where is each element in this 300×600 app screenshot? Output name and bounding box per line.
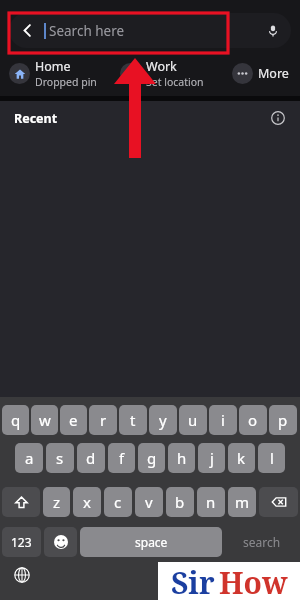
- button[interactable]: v: [135, 487, 163, 517]
- staticText: h: [177, 448, 187, 468]
- button[interactable]: n: [197, 487, 225, 517]
- staticText: z: [53, 492, 61, 512]
- button[interactable]: f: [108, 443, 135, 473]
- staticText: space: [135, 534, 168, 550]
- button[interactable]: Recent: [0, 101, 300, 135]
- button[interactable]: p: [269, 405, 297, 435]
- staticText: Recent: [14, 110, 58, 127]
- button[interactable]: search: [225, 527, 298, 557]
- button[interactable]: o: [239, 405, 267, 435]
- staticText: m: [235, 492, 250, 512]
- staticText: p: [278, 410, 288, 430]
- staticText: d: [86, 448, 96, 468]
- button[interactable]: Backspace: [259, 487, 298, 517]
- staticText: l: [270, 448, 274, 468]
- button[interactable]: h: [168, 443, 195, 473]
- button[interactable]: u: [179, 405, 207, 435]
- button[interactable]: x: [73, 487, 101, 517]
- button[interactable]: a: [15, 443, 43, 473]
- staticText: Dropped pin: [35, 75, 97, 89]
- button[interactable]: m: [228, 487, 256, 517]
- button[interactable]: z: [43, 487, 70, 517]
- staticText: g: [147, 448, 157, 468]
- staticText: Home: [35, 58, 71, 75]
- staticText: r: [100, 410, 107, 430]
- button[interactable]: Information: [267, 107, 289, 129]
- button[interactable]: s: [46, 443, 74, 473]
- staticText: u: [188, 410, 198, 430]
- staticText: c: [114, 492, 122, 512]
- button[interactable]: 123: [2, 527, 41, 557]
- staticText: q: [11, 410, 21, 430]
- button[interactable]: More: [232, 63, 291, 84]
- staticText: t: [130, 410, 136, 430]
- button[interactable]: t: [119, 405, 147, 435]
- staticText: x: [83, 492, 91, 512]
- staticText: 123: [11, 534, 32, 550]
- staticText: More: [258, 65, 289, 82]
- staticText: s: [56, 448, 64, 468]
- button[interactable]: Change keyboard language: [10, 563, 34, 587]
- staticText: Work: [146, 58, 177, 75]
- staticText: y: [159, 410, 167, 430]
- staticText: w: [39, 410, 51, 430]
- button[interactable]: Home: [9, 58, 120, 89]
- button[interactable]: Shift: [2, 487, 40, 517]
- staticText: Search here: [49, 22, 259, 40]
- staticText: a: [25, 448, 34, 468]
- button[interactable]: d: [77, 443, 105, 473]
- staticText: v: [145, 492, 153, 512]
- button[interactable]: e: [60, 405, 87, 435]
- button[interactable]: space: [80, 527, 222, 557]
- staticText: k: [237, 448, 246, 468]
- staticText: Sir: [171, 562, 215, 600]
- staticText: b: [175, 492, 185, 512]
- staticText: search: [243, 534, 281, 550]
- staticText: n: [206, 492, 216, 512]
- button[interactable]: l: [258, 443, 285, 473]
- staticText: f: [119, 448, 125, 468]
- button[interactable]: Emoji: [44, 527, 77, 557]
- staticText: e: [69, 410, 78, 430]
- staticText: j: [210, 448, 214, 468]
- button[interactable]: Work: [120, 58, 232, 89]
- button[interactable]: c: [104, 487, 132, 517]
- button[interactable]: y: [149, 405, 177, 435]
- button[interactable]: b: [166, 487, 194, 517]
- staticText: i: [221, 410, 225, 430]
- button[interactable]: j: [198, 443, 225, 473]
- staticText: How: [219, 562, 288, 600]
- button[interactable]: k: [228, 443, 255, 473]
- button[interactable]: w: [31, 405, 58, 435]
- button[interactable]: r: [89, 405, 117, 435]
- button[interactable]: g: [138, 443, 165, 473]
- button[interactable]: Voice search: [259, 17, 286, 44]
- button[interactable]: i: [209, 405, 237, 435]
- button[interactable]: q: [2, 405, 29, 435]
- button[interactable]: Back: [14, 17, 41, 44]
- button[interactable]: Back: [9, 13, 291, 48]
- staticText: Set location: [146, 75, 204, 89]
- staticText: o: [248, 410, 258, 430]
